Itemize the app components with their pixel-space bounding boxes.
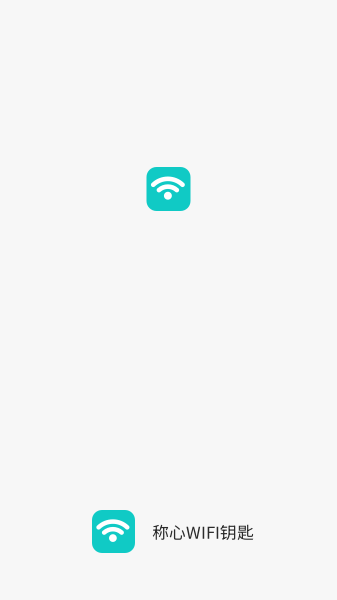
staticText: 称心WIFI钥匙: [152, 519, 254, 543]
